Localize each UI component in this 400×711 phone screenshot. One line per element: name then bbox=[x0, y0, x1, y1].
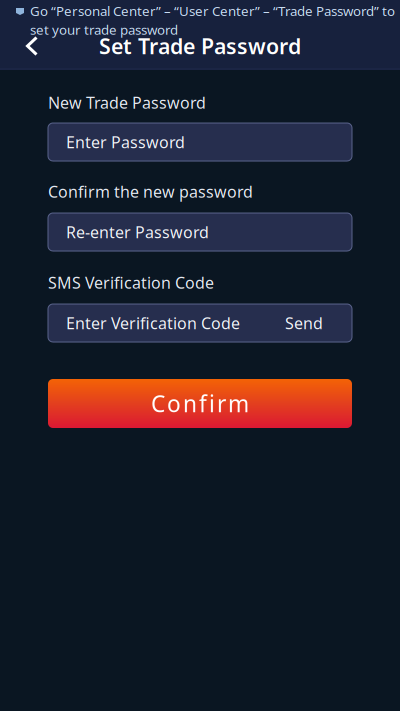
staticText: Go “Personal Center” – “User Center” – “… bbox=[30, 2, 395, 20]
staticText: set your trade password bbox=[30, 21, 178, 38]
staticText: Re-enter Password bbox=[66, 221, 209, 243]
staticText: SMS Verification Code bbox=[48, 272, 214, 293]
staticText: New Trade Password bbox=[48, 92, 206, 113]
button[interactable]: Send bbox=[285, 304, 352, 342]
staticText: Set Trade Password bbox=[99, 32, 301, 60]
staticText: Enter Verification Code bbox=[66, 312, 240, 334]
staticText: Confirm bbox=[151, 388, 249, 418]
button[interactable]: Confirm bbox=[48, 379, 352, 428]
staticText: Send bbox=[285, 312, 323, 334]
staticText: Enter Password bbox=[66, 131, 185, 153]
button[interactable]: Back bbox=[10, 33, 54, 59]
staticText: Confirm the new password bbox=[48, 181, 253, 202]
